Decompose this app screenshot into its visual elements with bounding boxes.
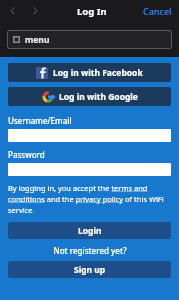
staticText: Log in with Google	[59, 91, 138, 103]
button[interactable]: Back	[5, 3, 21, 19]
staticText: menu	[25, 34, 50, 46]
staticText: Login	[78, 225, 102, 237]
staticText: Log in with Facebook	[53, 67, 143, 79]
button[interactable]: Not registered yet?	[8, 245, 171, 256]
staticText: By logging in, you accept the terms and …	[8, 183, 171, 215]
button[interactable]: menu	[7, 30, 172, 49]
staticText: Log In	[77, 5, 107, 18]
staticText: Cancel	[143, 5, 172, 17]
staticText: Username/Email	[8, 115, 72, 126]
button[interactable]: Sign up	[8, 261, 171, 278]
staticText: Not registered yet?	[53, 245, 127, 256]
button[interactable]: Forward	[27, 3, 43, 19]
button[interactable]: Log in with Facebook	[8, 63, 171, 82]
staticText: Sign up	[74, 264, 106, 276]
staticText: Password	[8, 149, 45, 160]
button[interactable]: Login	[8, 222, 171, 239]
button[interactable]: Cancel	[141, 2, 174, 20]
button[interactable]: Log in with Google	[8, 87, 171, 106]
